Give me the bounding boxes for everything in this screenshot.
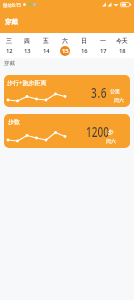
staticText: 17 [100, 47, 107, 55]
staticText: 12 [6, 47, 13, 55]
staticText: 日 [81, 37, 87, 44]
button[interactable]: 六 [55, 33, 74, 58]
staticText: 步数 [8, 118, 20, 126]
button[interactable]: 三 [0, 33, 18, 58]
button[interactable]: 日 [74, 33, 93, 58]
staticText: 公里 [110, 88, 120, 94]
button[interactable]: 今天 [112, 33, 131, 58]
button[interactable]: 一 [93, 33, 112, 58]
staticText: 六 [62, 37, 68, 44]
staticText: 15 [62, 47, 69, 55]
staticText: 四 [24, 37, 30, 44]
staticText: 13 [24, 47, 31, 55]
staticText: 1200 [86, 121, 109, 141]
staticText: 五 [43, 37, 49, 44]
staticText: 周六 [114, 97, 124, 103]
button[interactable]: 步行+跑步距离 [4, 75, 130, 107]
staticText: 今天 [116, 37, 128, 44]
staticText: 18 [119, 47, 126, 55]
button[interactable]: 步数 [4, 114, 130, 148]
staticText: 16 [81, 47, 88, 55]
button[interactable]: 五 [36, 33, 55, 58]
staticText: 三 [6, 37, 12, 44]
staticText: 周六 [106, 138, 116, 144]
staticText: 14 [43, 47, 50, 55]
staticText: 穿戴 [4, 60, 15, 67]
staticText: 步行+跑步距离 [7, 79, 47, 87]
staticText: 穿戴 [5, 18, 18, 26]
staticText: 一 [100, 37, 106, 44]
staticText: 3.6 [91, 82, 108, 102]
button[interactable]: 四 [18, 33, 36, 58]
staticText: 步 [108, 129, 114, 136]
staticText: 微信6:15 [3, 2, 21, 8]
